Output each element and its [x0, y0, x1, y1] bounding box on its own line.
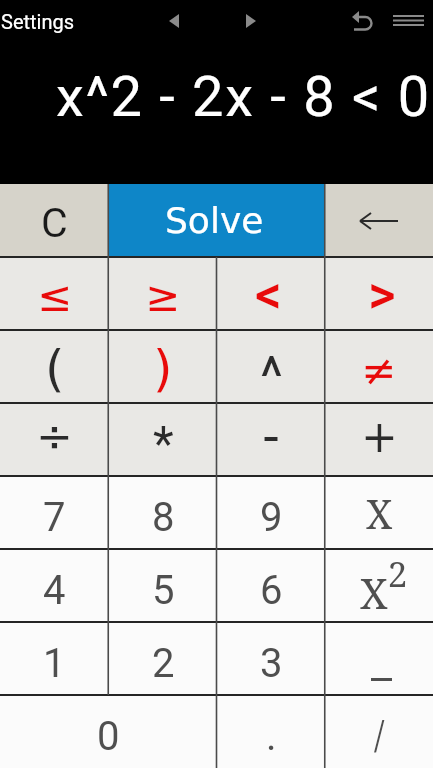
button[interactable]: ≠: [325, 330, 433, 403]
button[interactable]: ÷: [0, 403, 109, 476]
staticText: ≠: [361, 346, 397, 395]
staticText: *: [153, 415, 174, 471]
staticText: ÷: [36, 410, 73, 461]
button[interactable]: 5: [109, 549, 217, 622]
button[interactable]: Solve: [108, 184, 325, 257]
button[interactable]: [346, 6, 378, 36]
button[interactable]: +: [325, 403, 433, 476]
staticText: .: [266, 713, 277, 760]
staticText: Settings: [1, 10, 75, 33]
button[interactable]: [387, 5, 429, 35]
staticText: ≥: [145, 272, 181, 321]
button[interactable]: /: [325, 695, 433, 768]
button[interactable]: .: [217, 695, 325, 768]
staticText: ): [153, 340, 173, 398]
staticText: x^2 - 2x - 8 < 0: [56, 64, 431, 130]
staticText: 8: [152, 494, 175, 541]
staticText: ≤: [37, 272, 73, 321]
button[interactable]: [236, 6, 266, 36]
staticText: (: [45, 340, 65, 398]
button[interactable]: <: [217, 257, 325, 330]
button[interactable]: [325, 184, 433, 257]
staticText: 3: [260, 640, 283, 687]
button[interactable]: 6: [217, 549, 325, 622]
button[interactable]: Settings: [0, 2, 85, 39]
button[interactable]: *: [109, 403, 217, 476]
button[interactable]: 7: [0, 476, 109, 549]
button[interactable]: [325, 622, 433, 695]
button[interactable]: X2: [325, 549, 433, 622]
button[interactable]: ^: [217, 330, 325, 403]
button[interactable]: C: [0, 184, 108, 257]
staticText: 7: [43, 494, 66, 541]
staticText: 6: [260, 567, 283, 614]
button[interactable]: X: [325, 476, 433, 549]
staticText: <: [255, 264, 282, 326]
staticText: 5: [152, 567, 175, 614]
staticText: X: [366, 486, 393, 540]
button[interactable]: 3: [217, 622, 325, 695]
staticText: 1: [43, 640, 66, 687]
button[interactable]: 4: [0, 549, 109, 622]
button[interactable]: 2: [109, 622, 217, 695]
button[interactable]: ≤: [0, 257, 109, 330]
staticText: C: [41, 199, 68, 247]
staticText: X2: [360, 550, 408, 621]
button[interactable]: (: [0, 330, 109, 403]
button[interactable]: [159, 6, 189, 36]
button[interactable]: ≥: [109, 257, 217, 330]
button[interactable]: 1: [0, 622, 109, 695]
button[interactable]: 8: [109, 476, 217, 549]
staticText: 0: [97, 713, 120, 760]
staticText: 4: [43, 567, 66, 614]
button[interactable]: -: [217, 403, 325, 476]
staticText: -: [262, 407, 281, 465]
staticText: 9: [260, 494, 283, 541]
staticText: /: [374, 710, 385, 759]
button[interactable]: >: [325, 257, 433, 330]
button[interactable]: ): [109, 330, 217, 403]
staticText: ^: [260, 345, 283, 409]
button[interactable]: 0: [0, 695, 217, 768]
staticText: >: [368, 264, 396, 326]
staticText: +: [361, 411, 398, 462]
staticText: 2: [152, 640, 175, 687]
staticText: Solve: [165, 200, 264, 242]
button[interactable]: 9: [217, 476, 325, 549]
